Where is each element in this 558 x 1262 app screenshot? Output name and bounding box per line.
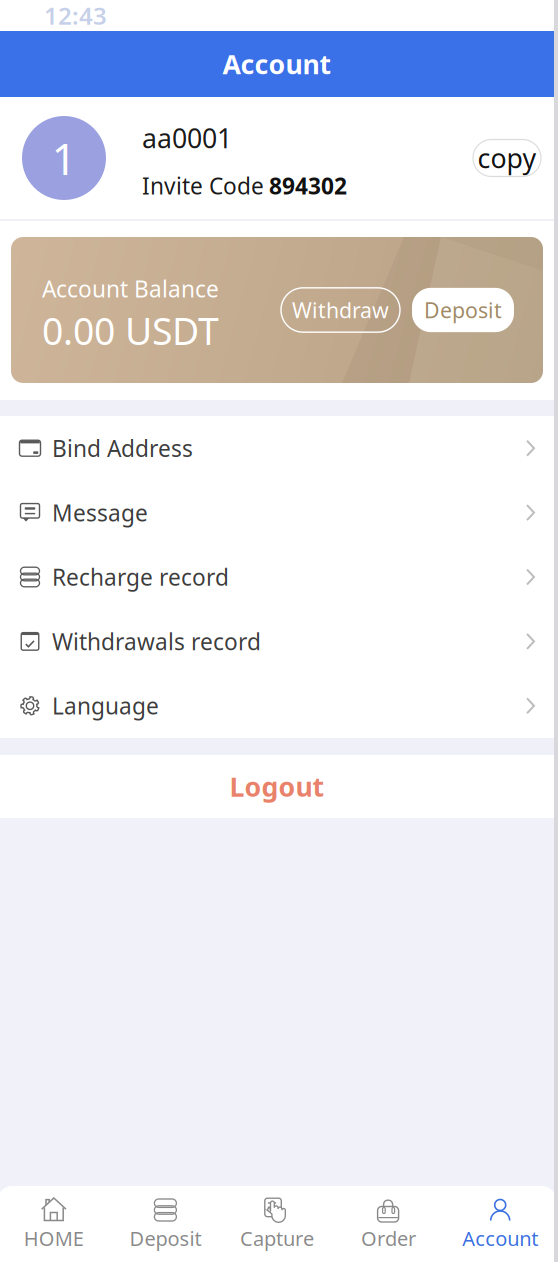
staticText: Capture xyxy=(240,1225,314,1252)
staticText: copy xyxy=(477,140,536,176)
button[interactable]: Account xyxy=(444,1186,556,1262)
button[interactable]: Withdraw xyxy=(281,288,400,332)
button[interactable]: Capture xyxy=(221,1186,333,1262)
staticText: HOME xyxy=(24,1225,84,1252)
staticText: Order xyxy=(361,1225,416,1252)
button[interactable]: Message xyxy=(0,480,556,545)
staticText: Withdrawals record xyxy=(52,626,261,656)
staticText: Logout xyxy=(229,769,324,804)
staticText: aa0001 xyxy=(142,120,232,156)
button[interactable]: Language xyxy=(0,674,556,738)
button[interactable]: HOME xyxy=(0,1186,110,1262)
staticText: Bind Address xyxy=(52,433,193,463)
staticText: 1 xyxy=(51,129,76,187)
button[interactable]: Bind Address xyxy=(0,416,556,480)
staticText: Language xyxy=(52,691,159,721)
button[interactable]: Deposit xyxy=(110,1186,221,1262)
staticText: Deposit xyxy=(129,1225,201,1252)
button[interactable]: copy xyxy=(473,139,541,176)
staticText: Message xyxy=(52,497,148,528)
button[interactable]: Withdrawals record xyxy=(0,609,556,674)
button[interactable]: Logout xyxy=(0,755,556,818)
staticText: Recharge record xyxy=(52,562,229,592)
staticText: Account xyxy=(222,46,331,82)
staticText: Withdraw xyxy=(292,296,389,324)
staticText: 12:43 xyxy=(44,0,107,31)
staticText: Invite Code xyxy=(142,171,264,201)
staticText: Account xyxy=(462,1225,538,1252)
button[interactable]: Deposit xyxy=(412,288,514,332)
staticText: Account Balance xyxy=(42,274,219,304)
button[interactable]: Order xyxy=(333,1186,444,1262)
staticText: Deposit xyxy=(424,296,502,324)
staticText: 894302 xyxy=(269,171,347,201)
staticText: 0.00 USDT xyxy=(42,306,219,355)
button[interactable]: Recharge record xyxy=(0,545,556,609)
